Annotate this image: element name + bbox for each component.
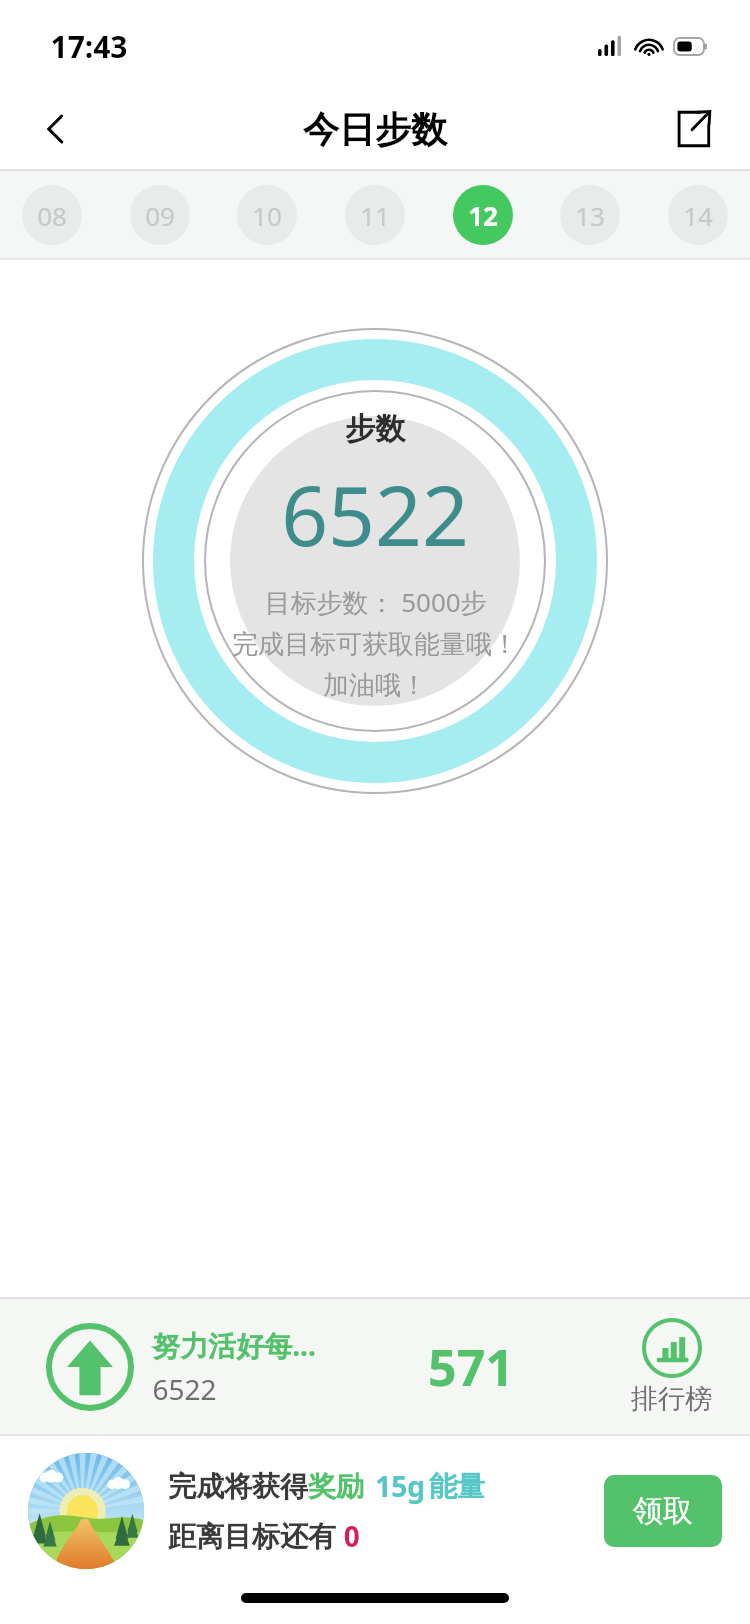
button[interactable]: Steps up xyxy=(46,1323,134,1411)
button[interactable]: 11 xyxy=(345,185,405,245)
staticText: 0 xyxy=(336,1517,360,1555)
button[interactable]: 08 xyxy=(22,185,82,245)
staticText: 今日步数 xyxy=(303,107,447,152)
staticText: 10 xyxy=(252,198,282,233)
staticText: 完成目标可获取能量哦！ xyxy=(232,628,518,661)
staticText: 能量 xyxy=(429,1469,485,1504)
button[interactable]: 领取 xyxy=(604,1475,722,1547)
button[interactable]: 排行榜 xyxy=(631,1318,712,1416)
staticText: 排行榜 xyxy=(631,1382,712,1416)
staticText: 领取 xyxy=(633,1492,693,1530)
button[interactable]: 10 xyxy=(237,185,297,245)
button[interactable]: 09 xyxy=(130,185,190,245)
staticText: 17:43 xyxy=(50,26,128,67)
staticText: 距离目标还有 xyxy=(168,1519,336,1554)
staticText: 14 xyxy=(683,198,713,233)
staticText: 13 xyxy=(575,198,605,233)
staticText: 加油哦！ xyxy=(323,669,427,702)
staticText: 目标步数： 5000步 xyxy=(264,584,487,620)
button[interactable]: 14 xyxy=(668,185,728,245)
staticText: 6522 xyxy=(152,1370,217,1408)
staticText: 15g xyxy=(364,1467,429,1505)
staticText: 09 xyxy=(145,198,175,233)
staticText: 6522 xyxy=(281,458,469,570)
staticText: 08 xyxy=(37,198,67,233)
staticText: 完成将获得 xyxy=(168,1469,308,1504)
staticText: 571 xyxy=(428,1333,514,1401)
button[interactable]: Share xyxy=(654,91,730,167)
staticText: 奖励 xyxy=(308,1469,364,1504)
staticText: 步数 xyxy=(345,410,405,448)
button[interactable]: Back xyxy=(18,91,94,167)
staticText: 努力活好每... xyxy=(152,1326,316,1364)
staticText: 11 xyxy=(360,198,390,233)
staticText: 12 xyxy=(468,198,498,233)
button[interactable]: 12 xyxy=(453,185,513,245)
button[interactable]: 13 xyxy=(560,185,620,245)
